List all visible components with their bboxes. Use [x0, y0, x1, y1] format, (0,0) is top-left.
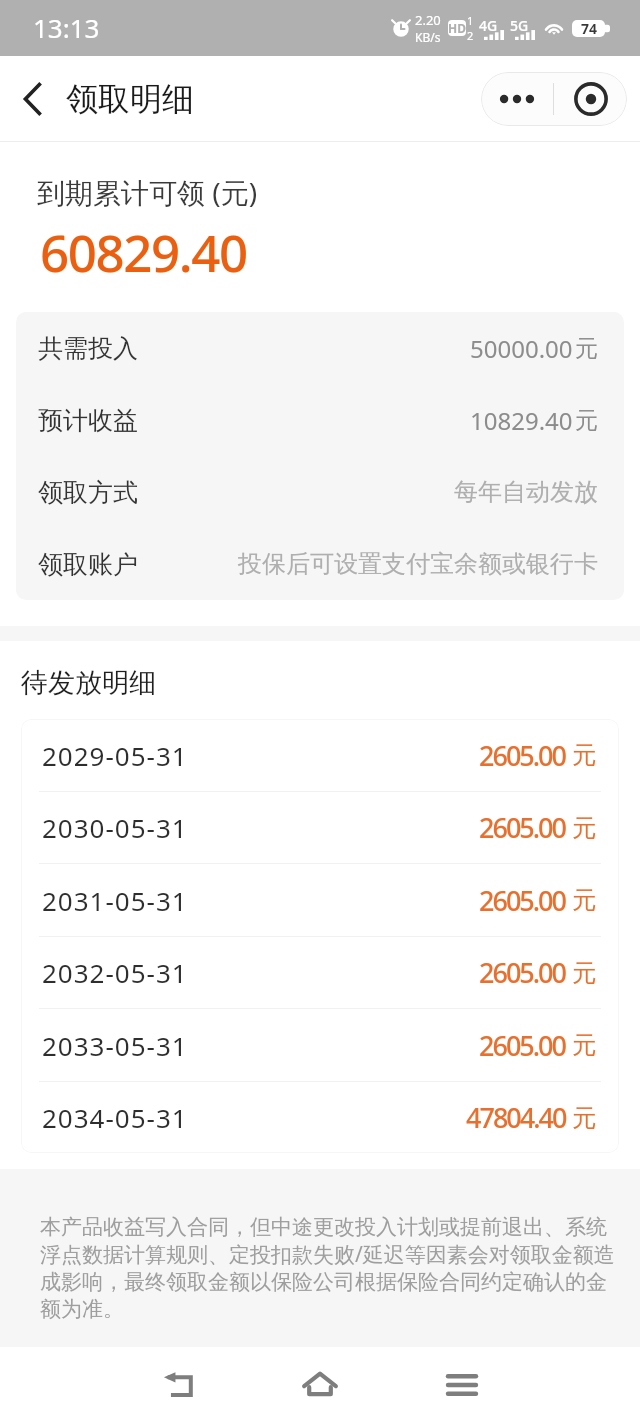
staticText: 领取方式	[38, 477, 138, 508]
staticText: 2605.00	[479, 809, 566, 846]
staticText: 本产品收益写入合同，但中途更改投入计划或提前退出、系统浮点数据计算规则、定投扣款…	[40, 1214, 622, 1322]
staticText: 2605.00	[479, 1027, 566, 1064]
staticText: 2605.00	[479, 737, 566, 774]
button[interactable]: Back	[0, 56, 66, 142]
staticText: 元	[575, 334, 598, 363]
staticText: 2030-05-31	[42, 810, 188, 845]
staticText: 预计收益	[38, 405, 138, 436]
staticText: 50000.00	[470, 332, 573, 365]
staticText: 2029-05-31	[42, 738, 188, 773]
staticText: 2031-05-31	[42, 883, 188, 918]
staticText: 元	[575, 406, 598, 435]
button[interactable]: 2030-05-31	[21, 792, 619, 863]
staticText: 投保后可设置支付宝余额或银行卡	[238, 549, 598, 579]
staticText: 10829.40	[470, 404, 573, 437]
staticText: 74	[581, 19, 598, 38]
staticText: 47804.40	[466, 1099, 566, 1136]
button[interactable]: Back	[137, 1347, 219, 1422]
staticText: 元	[572, 885, 596, 915]
staticText: 到期累计可领 (元)	[37, 173, 258, 211]
staticText: 元	[572, 740, 596, 770]
button[interactable]: 2034-05-31	[21, 1082, 619, 1153]
staticText: 2	[467, 28, 474, 43]
staticText: 2605.00	[479, 882, 566, 919]
staticText: 1	[467, 13, 474, 28]
staticText: 共需投入	[38, 333, 138, 364]
staticText: 4G	[479, 16, 498, 35]
staticText: 60829.40	[40, 217, 247, 286]
staticText: 2033-05-31	[42, 1028, 188, 1063]
staticText: 2032-05-31	[42, 955, 188, 990]
button[interactable]: 2031-05-31	[21, 864, 619, 936]
staticText: 元	[572, 813, 596, 843]
button[interactable]: 2032-05-31	[21, 937, 619, 1008]
button[interactable]: More options	[481, 72, 553, 126]
staticText: 领取账户	[38, 549, 138, 580]
button[interactable]: Menu	[421, 1347, 503, 1422]
button[interactable]: Home	[279, 1347, 361, 1422]
staticText: 2605.00	[479, 954, 566, 991]
staticText: 元	[572, 1030, 596, 1060]
staticText: 领取明细	[66, 79, 194, 119]
staticText: 2.20	[415, 11, 441, 29]
button[interactable]: 2033-05-31	[21, 1009, 619, 1081]
staticText: 13:13	[33, 10, 100, 45]
button[interactable]: 2029-05-31	[21, 719, 619, 791]
staticText: 元	[572, 1103, 596, 1133]
button[interactable]: Close mini program	[554, 72, 627, 126]
staticText: 2034-05-31	[42, 1100, 188, 1135]
staticText: 每年自动发放	[454, 477, 598, 507]
staticText: 待发放明细	[21, 666, 156, 700]
staticText: 元	[572, 958, 596, 988]
staticText: 5G	[510, 16, 529, 35]
staticText: HD	[448, 20, 466, 36]
staticText: KB/s	[415, 29, 441, 45]
